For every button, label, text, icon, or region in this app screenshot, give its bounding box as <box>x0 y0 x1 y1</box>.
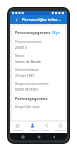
button[interactable]: Wijzigen <box>51 29 62 36</box>
button[interactable]: Burgerservicenummer <box>15 80 62 94</box>
staticText: Partnergegevens <box>15 96 48 101</box>
button[interactable]: Geboortedatum <box>15 66 62 80</box>
staticText: - <box>15 110 17 115</box>
button[interactable]: Back <box>51 134 57 140</box>
button[interactable]: Home <box>36 134 42 140</box>
button[interactable]: Delen <box>39 122 53 133</box>
button[interactable]: Back <box>13 16 20 23</box>
button[interactable]: Naam <box>15 52 62 66</box>
staticText: 23 mei 1987 <box>15 73 35 78</box>
staticText: Profiel <box>29 129 36 132</box>
staticText: Burgerservicenummer <box>15 82 49 86</box>
staticText: Persoonlijke informatie <box>22 17 64 23</box>
button[interactable]: Profiel <box>25 122 39 133</box>
button[interactable]: Overzicht <box>10 122 25 133</box>
staticText: 200010 <box>15 45 27 50</box>
button[interactable]: Instellingen <box>53 122 67 133</box>
staticText: Persoonsnummer <box>15 40 42 44</box>
staticText: Wijzigen <box>52 30 61 35</box>
staticText: Geboortedatum <box>15 68 40 72</box>
button[interactable]: Recents <box>20 134 26 140</box>
staticText: Persoonsgegevens <box>15 30 51 35</box>
button[interactable]: Burgerlijke staat <box>15 103 62 117</box>
staticText: Overzicht <box>13 129 23 132</box>
staticText: 505510101001 <box>15 87 39 92</box>
staticText: Naam <box>15 54 24 58</box>
staticText: Instellingen <box>54 129 67 132</box>
staticText: Sanne de Bonde <box>15 59 41 64</box>
staticText: Delen <box>43 129 49 132</box>
button[interactable]: Persoonsnummer <box>15 38 62 52</box>
staticText: Burgerlijke staat <box>15 105 40 109</box>
